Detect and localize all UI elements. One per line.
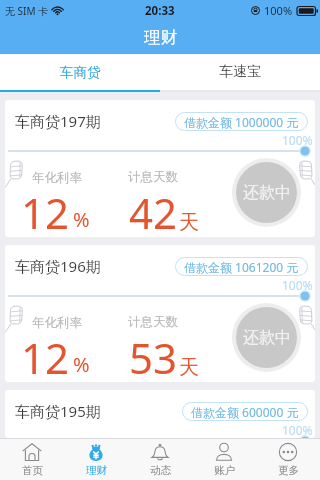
button[interactable]: 理财 <box>64 439 128 480</box>
button[interactable]: 车商贷196期 <box>5 245 315 382</box>
staticText: 借款金额 1061200 元 <box>184 259 299 275</box>
staticText: 借款金额 600000 元 <box>191 404 299 420</box>
staticText: 12 <box>21 184 70 237</box>
staticText: 动态 <box>150 464 171 477</box>
staticText: 年化利率 <box>32 170 82 186</box>
staticText: 车商贷195期 <box>15 401 101 421</box>
staticText: 还款中 <box>243 183 291 203</box>
button[interactable]: 首页 <box>0 439 64 480</box>
staticText: 计息天数 <box>128 169 178 185</box>
button[interactable]: 还款中 <box>236 307 297 368</box>
button[interactable]: 车商贷197期 <box>5 100 315 237</box>
staticText: 更多 <box>278 464 299 477</box>
staticText: 年化利率 <box>32 315 82 331</box>
staticText: 车速宝 <box>219 63 261 81</box>
staticText: 天 <box>179 210 199 235</box>
staticText: 20:33 <box>145 3 175 19</box>
staticText: % <box>73 206 90 233</box>
staticText: 车商贷 <box>60 64 101 81</box>
staticText: 理财 <box>86 464 107 477</box>
staticText: 无 SIM 卡 <box>5 4 49 18</box>
staticText: 42 <box>129 184 178 237</box>
button[interactable]: 车速宝 <box>160 54 320 90</box>
button[interactable]: 车商贷195期 <box>5 390 315 438</box>
staticText: 12 <box>21 329 70 382</box>
staticText: 车商贷196期 <box>15 256 101 276</box>
staticText: 53 <box>129 329 178 382</box>
staticText: 理财 <box>144 27 177 48</box>
staticText: 账户 <box>214 464 235 477</box>
staticText: 计息天数 <box>128 314 178 330</box>
staticText: % <box>73 351 90 378</box>
staticText: 100% <box>282 132 313 148</box>
staticText: 借款金额 1000000 元 <box>184 114 299 130</box>
button[interactable]: 还款中 <box>236 162 297 223</box>
button[interactable]: 账户 <box>192 439 256 480</box>
staticText: 车商贷197期 <box>15 111 101 131</box>
staticText: 100% <box>264 3 293 18</box>
button[interactable]: 动态 <box>128 439 192 480</box>
button[interactable]: 更多 <box>256 439 320 480</box>
button[interactable]: 车商贷 <box>0 54 160 90</box>
staticText: 100% <box>282 277 313 293</box>
staticText: 首页 <box>22 464 43 477</box>
staticText: 100% <box>282 422 313 438</box>
staticText: 还款中 <box>243 328 291 348</box>
staticText: 天 <box>179 355 199 380</box>
